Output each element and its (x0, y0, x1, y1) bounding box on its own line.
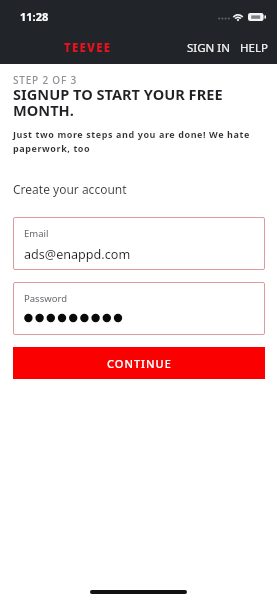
staticText: Password (24, 292, 67, 305)
staticText: SIGN IN (187, 40, 230, 56)
other: Password entered (24, 312, 130, 324)
staticText: CONTINUE (107, 356, 172, 371)
staticText: HELP (240, 40, 268, 56)
button[interactable]: CONTINUE (13, 347, 265, 379)
staticText: 11:28 (20, 9, 49, 24)
staticText: Email (24, 227, 49, 240)
staticText: ads@enappd.com (24, 246, 131, 263)
other: Cellular signal (218, 12, 229, 22)
button[interactable]: TEEVEE (58, 36, 118, 60)
button[interactable]: SIGN IN (184, 35, 233, 61)
staticText: Create your account (13, 181, 127, 197)
button[interactable]: HELP (237, 35, 271, 61)
button[interactable]: Email (13, 217, 265, 270)
staticText: TEEVEE (64, 40, 112, 56)
other: Wi-Fi (232, 11, 244, 22)
button[interactable]: Password (13, 282, 265, 335)
staticText: STEP 2 OF 3 (13, 73, 77, 87)
other: Battery (248, 11, 266, 22)
staticText: SIGNUP TO START YOUR FREE MONTH. (13, 84, 265, 120)
staticText: Just two more steps and you are done! We… (13, 128, 265, 154)
